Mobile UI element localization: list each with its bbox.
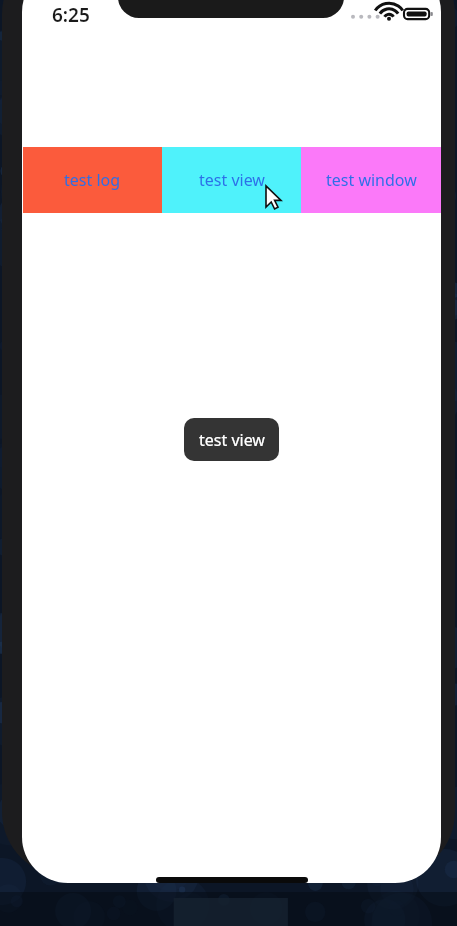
staticText: test view <box>199 169 265 191</box>
button[interactable]: test window <box>301 147 441 213</box>
staticText: test view <box>199 429 265 451</box>
other: Cellular signal <box>350 7 376 21</box>
staticText: test window <box>326 169 417 191</box>
button[interactable]: test log <box>23 147 162 213</box>
staticText: 6:25 <box>52 2 90 28</box>
staticText: test log <box>64 169 121 191</box>
other: Wi-Fi <box>379 6 399 22</box>
button[interactable]: test view <box>162 147 301 213</box>
other: Battery <box>404 6 434 22</box>
button[interactable]: test view <box>184 418 279 461</box>
